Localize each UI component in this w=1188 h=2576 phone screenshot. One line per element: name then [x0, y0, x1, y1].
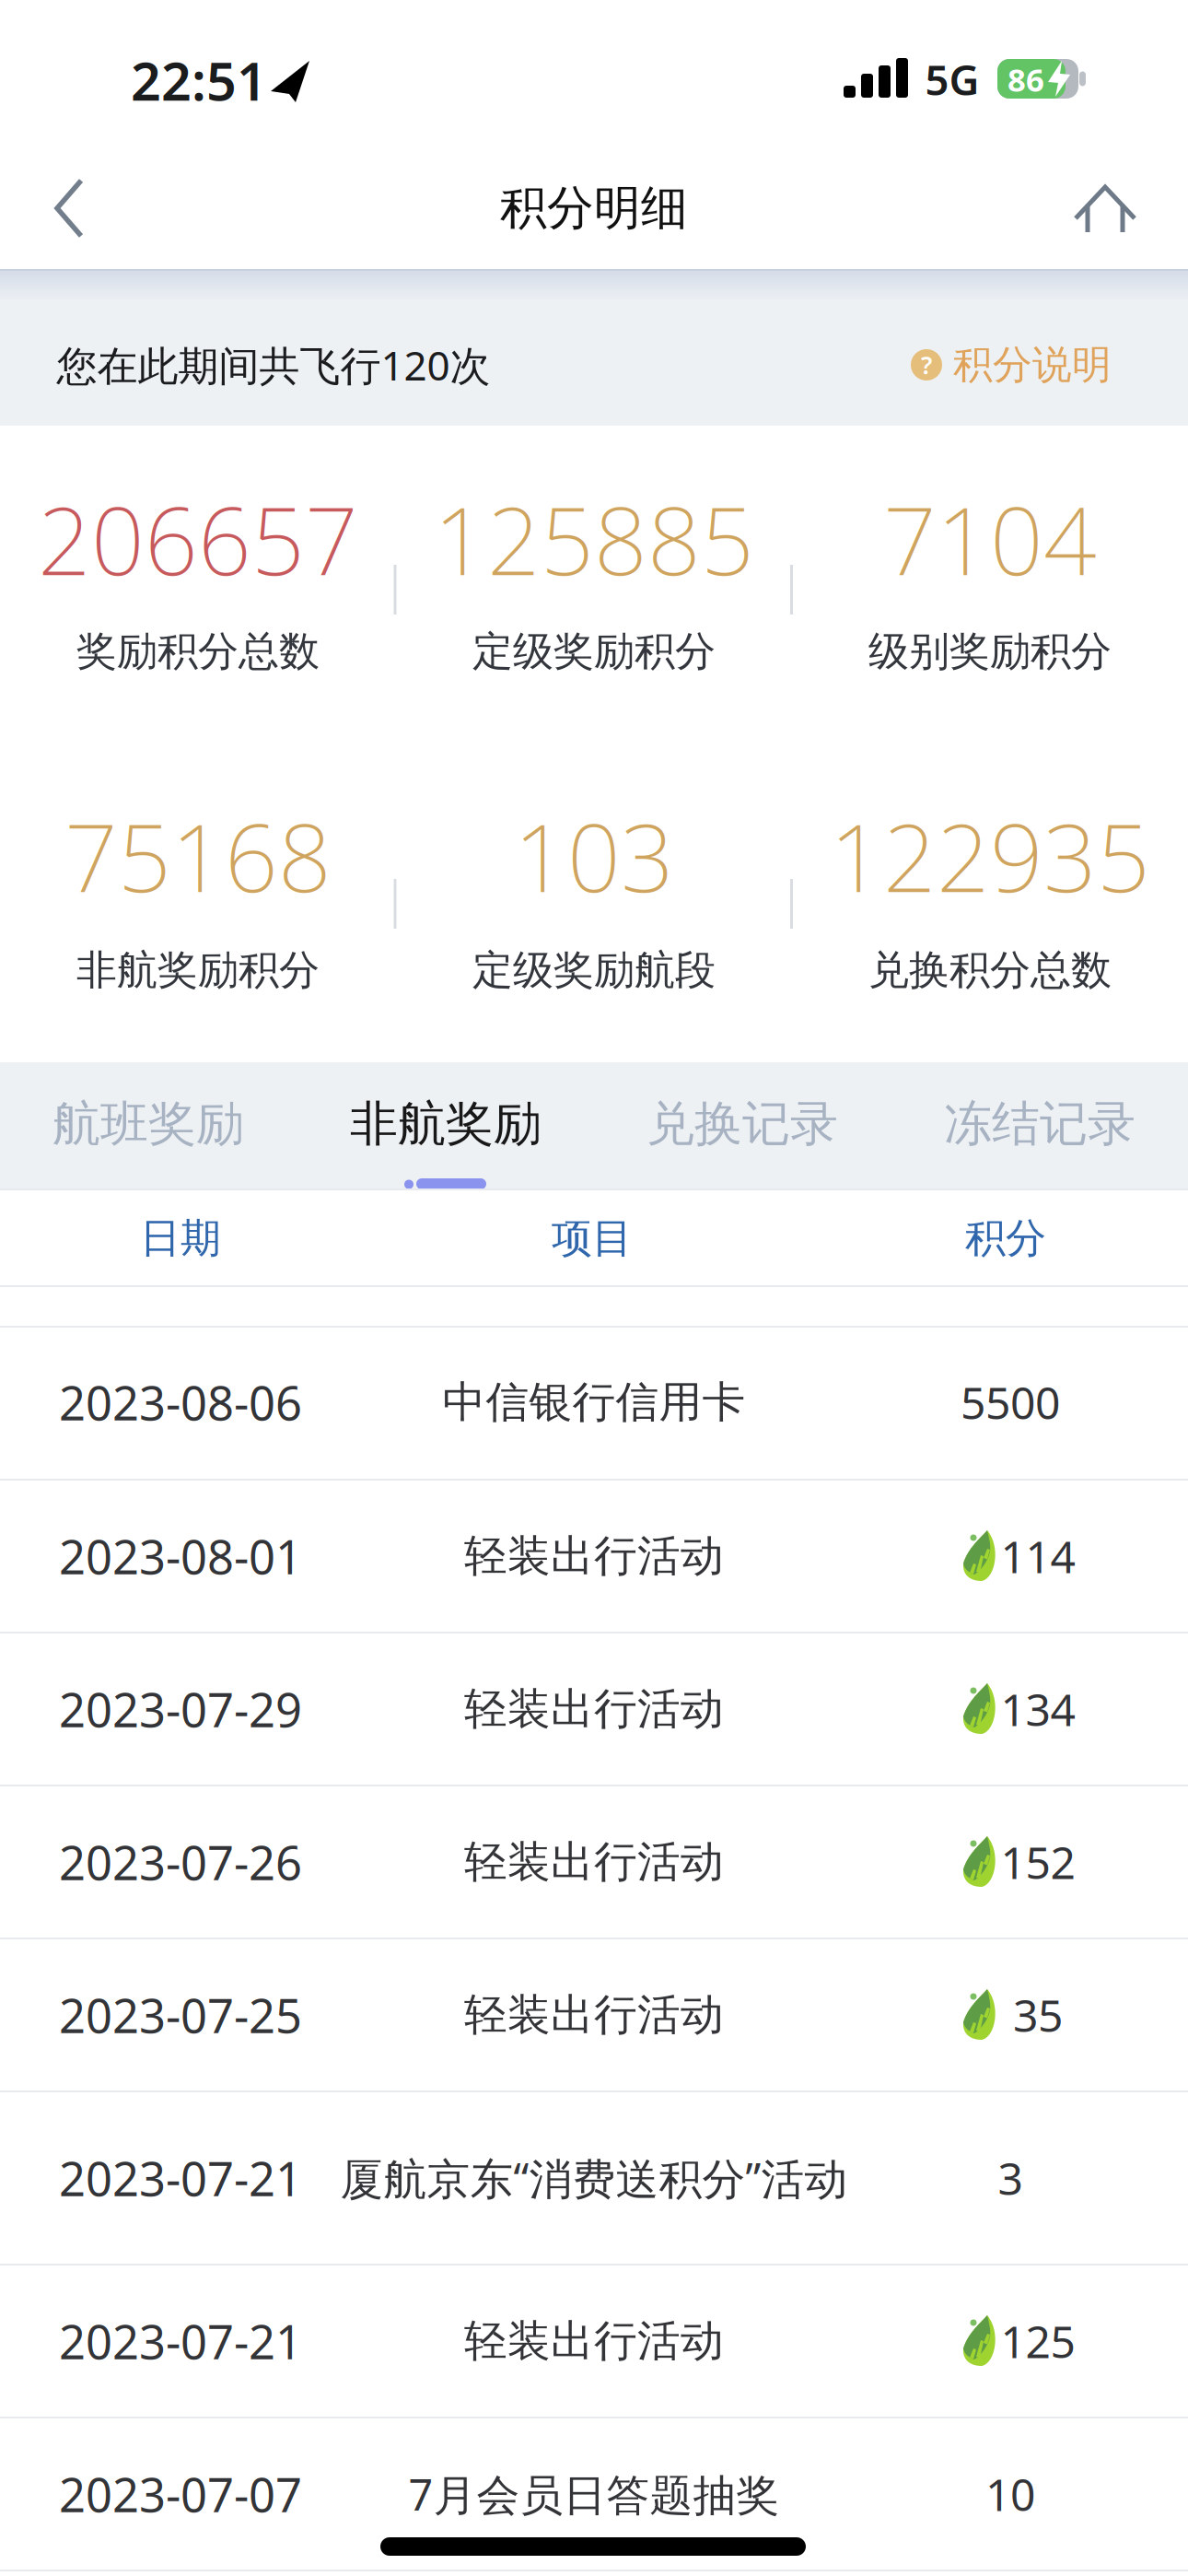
- button[interactable]: 非航奖励: [317, 1069, 575, 1179]
- staticText: 7月会员日答题抽奖: [408, 2465, 780, 2523]
- staticText: 项目: [552, 1213, 633, 1263]
- staticText: 兑换积分总数: [868, 945, 1112, 995]
- staticText: 非航奖励积分: [76, 945, 320, 995]
- staticText: 125885: [434, 477, 754, 601]
- staticText: 35: [1013, 1986, 1063, 2044]
- staticText: 114: [1001, 1527, 1075, 1585]
- staticText: 2023-07-21: [59, 2310, 302, 2372]
- staticText: 级别奖励积分: [868, 626, 1112, 676]
- staticText: 2023-08-06: [59, 1371, 302, 1433]
- staticText: 7104: [883, 477, 1097, 601]
- staticText: 2023-07-29: [59, 1678, 302, 1740]
- button[interactable]: 兑换记录: [613, 1069, 871, 1179]
- staticText: 中信银行信用卡: [443, 1376, 745, 1429]
- staticText: 兑换记录: [646, 1095, 838, 1153]
- staticText: 122935: [830, 794, 1150, 918]
- staticText: 积分说明: [953, 341, 1112, 389]
- staticText: 75168: [64, 794, 332, 918]
- staticText: 10: [985, 2465, 1035, 2523]
- staticText: 轻装出行活动: [464, 1530, 724, 1582]
- staticText: 2023-08-01: [59, 1525, 302, 1587]
- staticText: ?: [921, 349, 932, 381]
- staticText: 定级奖励积分: [472, 626, 716, 676]
- staticText: 定级奖励航段: [472, 945, 716, 995]
- staticText: 轻装出行活动: [464, 1988, 724, 2041]
- staticText: 134: [1001, 1680, 1075, 1738]
- button[interactable]: Back: [33, 158, 107, 259]
- button[interactable]: Home: [1064, 158, 1147, 260]
- staticText: 103: [514, 794, 674, 918]
- staticText: 3: [998, 2149, 1023, 2207]
- staticText: 2023-07-07: [59, 2463, 302, 2525]
- staticText: 日期: [140, 1213, 221, 1263]
- staticText: 冻结记录: [944, 1095, 1136, 1153]
- staticText: 积分: [965, 1213, 1046, 1263]
- staticText: 轻装出行活动: [464, 1836, 724, 1888]
- staticText: 轻装出行活动: [464, 2315, 724, 2367]
- staticText: 2023-07-21: [59, 2147, 302, 2209]
- staticText: 您在此期间共飞行120次: [57, 338, 490, 392]
- staticText: 86: [1007, 58, 1044, 100]
- button[interactable]: ?: [911, 341, 1112, 389]
- button[interactable]: 航班奖励: [19, 1069, 277, 1179]
- staticText: 厦航京东“消费送积分”活动: [340, 2149, 848, 2207]
- staticText: 奖励积分总数: [76, 626, 320, 676]
- staticText: 5500: [961, 1373, 1060, 1432]
- button[interactable]: 冻结记录: [911, 1069, 1169, 1179]
- staticText: 125: [1001, 2312, 1075, 2370]
- staticText: 非航奖励: [350, 1095, 542, 1153]
- staticText: 轻装出行活动: [464, 1683, 724, 1735]
- staticText: 152: [1001, 1833, 1075, 1891]
- staticText: 航班奖励: [52, 1095, 244, 1153]
- staticText: 22:51: [131, 45, 267, 115]
- staticText: 2023-07-25: [59, 1984, 302, 2046]
- staticText: 206657: [38, 477, 358, 601]
- staticText: 积分明细: [500, 180, 688, 237]
- staticText: 2023-07-26: [59, 1831, 302, 1893]
- staticText: 5G: [925, 52, 979, 107]
